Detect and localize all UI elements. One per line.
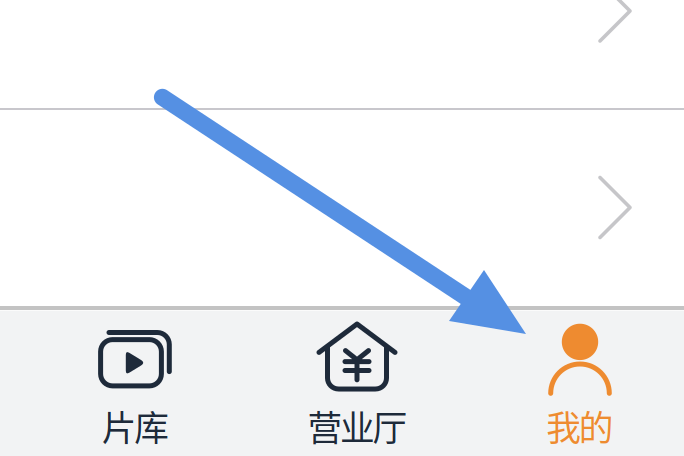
staticText: 片库 [102, 401, 169, 451]
button[interactable]: 营业厅 [267, 306, 447, 456]
button[interactable]: 片库 [45, 306, 225, 456]
staticText: 营业厅 [307, 401, 407, 451]
button[interactable]: 我的 [490, 306, 670, 456]
button[interactable]: List item [0, 0, 684, 108]
button[interactable]: List item [0, 110, 684, 306]
staticText: 我的 [546, 401, 614, 451]
